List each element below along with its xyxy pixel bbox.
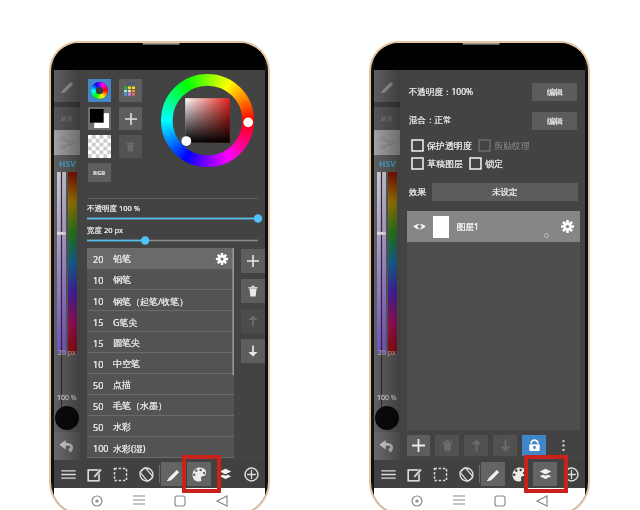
staticText: 50	[93, 379, 104, 391]
staticText: 图层1	[457, 221, 479, 233]
button[interactable]: Edit	[402, 462, 426, 486]
button[interactable]: Add	[241, 249, 265, 273]
staticText: 钢笔（起笔/收笔）	[113, 295, 189, 307]
button[interactable]: Recents	[450, 492, 468, 510]
button[interactable]: Recents	[130, 492, 148, 510]
button[interactable]: Menu	[376, 462, 400, 486]
button[interactable]: Brush	[481, 462, 505, 486]
button[interactable]: Brush	[54, 70, 80, 102]
button[interactable]: Move up	[464, 435, 488, 456]
button[interactable]: Select	[108, 462, 132, 486]
button[interactable]: 保护透明度	[412, 140, 472, 151]
button[interactable]: More	[551, 435, 575, 456]
button[interactable]: 100	[87, 437, 234, 458]
button[interactable]: 15	[87, 311, 234, 332]
staticText: 15	[93, 337, 104, 349]
staticText: 水彩	[113, 421, 131, 432]
button[interactable]: Brush	[374, 70, 400, 102]
button[interactable]: 锁定	[470, 158, 503, 169]
staticText: 剪贴纹理	[494, 140, 530, 151]
button[interactable]: Rotate	[454, 462, 478, 486]
button[interactable]: Lock	[522, 435, 546, 456]
button[interactable]: Color	[187, 462, 211, 486]
button[interactable]: Back	[533, 492, 551, 510]
button[interactable]: 草稿图层	[412, 158, 463, 169]
button[interactable]: Add layer	[407, 435, 430, 456]
button[interactable]: Brush	[161, 462, 185, 486]
staticText: 未设定	[492, 187, 518, 198]
button[interactable]: 15	[87, 332, 234, 353]
button[interactable]: View	[239, 462, 263, 486]
button[interactable]: 编辑	[532, 83, 577, 101]
button[interactable]: Layers	[533, 462, 557, 486]
button[interactable]: 图层1	[407, 211, 580, 242]
button[interactable]: RGB	[88, 163, 111, 182]
button[interactable]: 50	[87, 395, 234, 416]
button[interactable]: 10	[87, 269, 234, 290]
button[interactable]: Add	[119, 107, 142, 130]
button[interactable]: Delete	[241, 279, 265, 303]
staticText: G笔尖	[113, 316, 138, 328]
staticText: 锁定	[485, 158, 503, 169]
button[interactable]: 编辑	[532, 112, 577, 130]
button[interactable]: Transparent	[88, 135, 111, 158]
staticText: 10	[93, 274, 104, 286]
staticText: 材质	[61, 115, 73, 123]
button[interactable]: Assistant	[408, 492, 426, 510]
button[interactable]: 10	[87, 353, 234, 374]
button[interactable]: Back	[213, 492, 231, 510]
button[interactable]: Home	[171, 492, 189, 510]
staticText: 20	[93, 253, 104, 265]
staticText: HSV	[379, 158, 396, 170]
staticText: 编辑	[547, 116, 563, 126]
button[interactable]: Undo	[54, 432, 80, 460]
button[interactable]: Undo	[374, 432, 400, 460]
staticText: 20 px	[378, 348, 396, 358]
staticText: 编辑	[547, 87, 563, 97]
button[interactable]: Delete layer	[435, 435, 459, 456]
staticText: 20 px	[58, 348, 76, 358]
staticText: 材质	[381, 115, 393, 123]
button[interactable]: Menu	[56, 462, 80, 486]
button[interactable]	[87, 236, 258, 245]
button[interactable]: Color	[507, 462, 531, 486]
button[interactable]: Transform	[54, 130, 80, 155]
staticText: 100 %	[377, 393, 397, 403]
button[interactable]: Home	[491, 492, 509, 510]
staticText: 不透明度 100 %	[87, 203, 141, 213]
staticText: RGB	[93, 169, 106, 177]
button[interactable]: Palette	[119, 79, 142, 102]
button[interactable]: Layers	[213, 462, 237, 486]
button[interactable]: Delete	[119, 135, 142, 158]
button[interactable]: View	[559, 462, 583, 486]
button[interactable]: Transform	[374, 130, 400, 155]
button[interactable]: Color wheel	[88, 79, 111, 102]
staticText: 毛笔（水墨）	[113, 400, 167, 411]
staticText: 水彩(湿)	[113, 442, 146, 454]
button[interactable]: 剪贴纹理	[479, 140, 530, 151]
button[interactable]: 20	[87, 248, 234, 269]
button[interactable]: 未设定	[432, 183, 578, 201]
button[interactable]: Edit	[82, 462, 106, 486]
staticText: 混合：正常	[409, 115, 452, 126]
button[interactable]: Move down	[493, 435, 517, 456]
staticText: 10	[93, 295, 104, 307]
button[interactable]: 10	[87, 290, 234, 311]
staticText: 圆笔尖	[113, 337, 140, 348]
button[interactable]: Select	[428, 462, 452, 486]
staticText: 50	[93, 421, 104, 433]
button[interactable]: Current color	[88, 107, 111, 130]
button[interactable]: Rotate	[134, 462, 158, 486]
button[interactable]: Move down	[241, 339, 265, 363]
button[interactable]: 50	[87, 416, 234, 437]
staticText: 中空笔	[113, 358, 140, 369]
staticText: 100	[93, 442, 109, 454]
staticText: HSV	[59, 158, 76, 170]
button[interactable]: Move up	[241, 309, 265, 333]
staticText: 100 %	[57, 393, 77, 403]
staticText: 15	[93, 316, 104, 328]
button[interactable]: Assistant	[88, 492, 106, 510]
staticText: 10	[93, 358, 104, 370]
button[interactable]	[87, 214, 258, 223]
button[interactable]: 50	[87, 374, 234, 395]
